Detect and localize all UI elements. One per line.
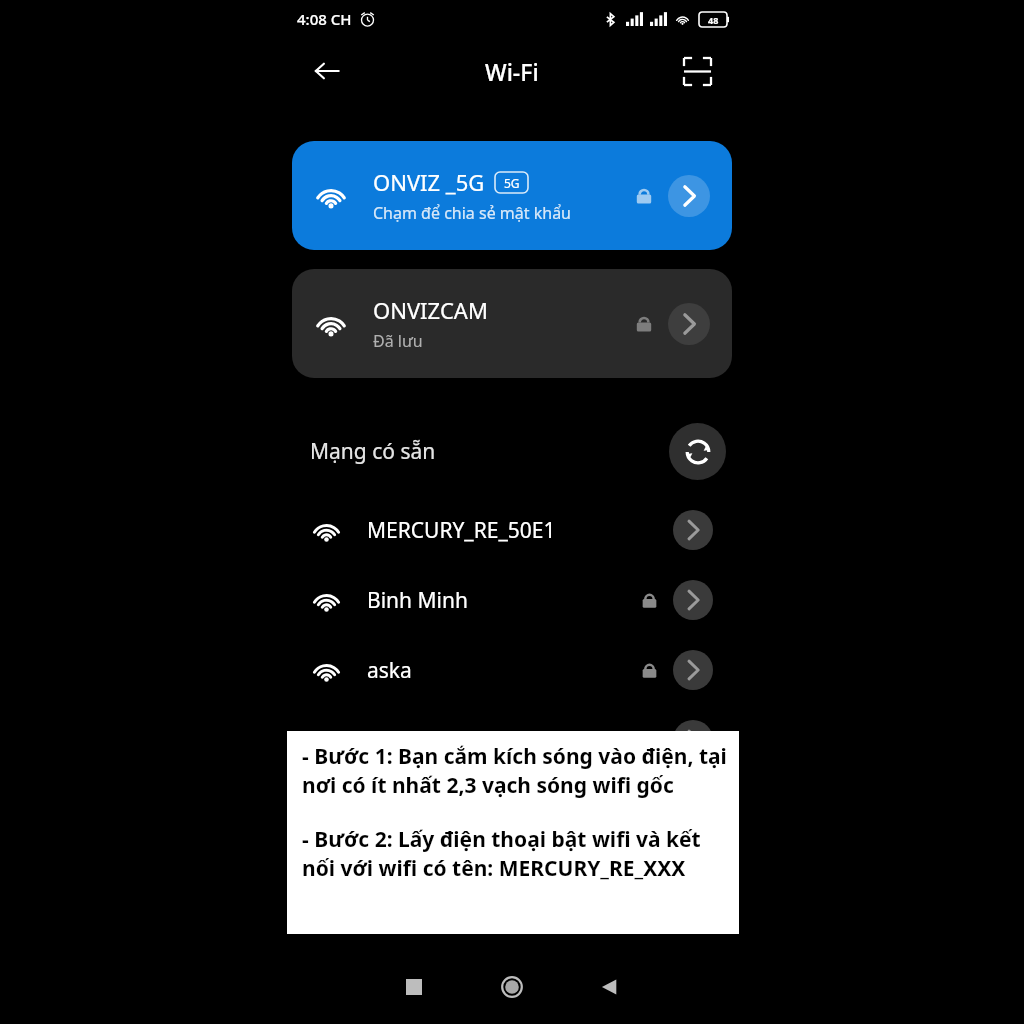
button[interactable]: Network details: [673, 510, 713, 550]
button[interactable]: Network details: [668, 303, 710, 345]
staticText: MERCURY_RE_50E1: [367, 516, 640, 545]
button[interactable]: ONVIZCAM: [292, 269, 732, 378]
button[interactable]: Back: [578, 955, 642, 1019]
button[interactable]: Network details: [673, 720, 713, 760]
staticText: - Bước 1: Bạn cắm kích sóng vào điện, tạ…: [302, 742, 729, 800]
button[interactable]: Thai: [275, 705, 749, 775]
button[interactable]: aska: [275, 635, 749, 705]
button[interactable]: Network details: [673, 650, 713, 690]
button[interactable]: Refresh: [669, 423, 726, 480]
button[interactable]: ONVIZ _5G: [292, 141, 732, 250]
staticText: Mạng có sẵn: [310, 437, 669, 466]
button[interactable]: Binh Minh: [275, 565, 749, 635]
staticText: Thai: [367, 726, 640, 755]
staticText: aska: [367, 656, 640, 685]
button[interactable]: MERCURY_RE_50E1: [275, 495, 749, 565]
button[interactable]: Scan QR code: [675, 49, 719, 93]
staticText: Binh Minh: [367, 586, 640, 615]
button[interactable]: Back: [305, 49, 349, 93]
staticText: - Bước 2: Lấy điện thoại bật wifi và kết…: [302, 825, 729, 883]
staticText: Đã lưu: [373, 330, 423, 352]
staticText: 5G: [504, 175, 520, 191]
button[interactable]: Home: [480, 955, 544, 1019]
button[interactable]: Recent apps: [382, 955, 446, 1019]
staticText: 48: [708, 14, 719, 26]
staticText: 4:08 CH: [297, 9, 352, 29]
button[interactable]: Network details: [673, 580, 713, 620]
staticText: ONVIZCAM: [373, 295, 488, 325]
staticText: Wi-Fi: [485, 56, 539, 87]
button[interactable]: Network details: [668, 175, 710, 217]
staticText: ONVIZ _5G: [373, 167, 485, 197]
staticText: Chạm để chia sẻ mật khẩu: [373, 202, 572, 224]
button[interactable]: - Bước 1: Bạn cắm kích sóng vào điện, tạ…: [287, 731, 739, 934]
